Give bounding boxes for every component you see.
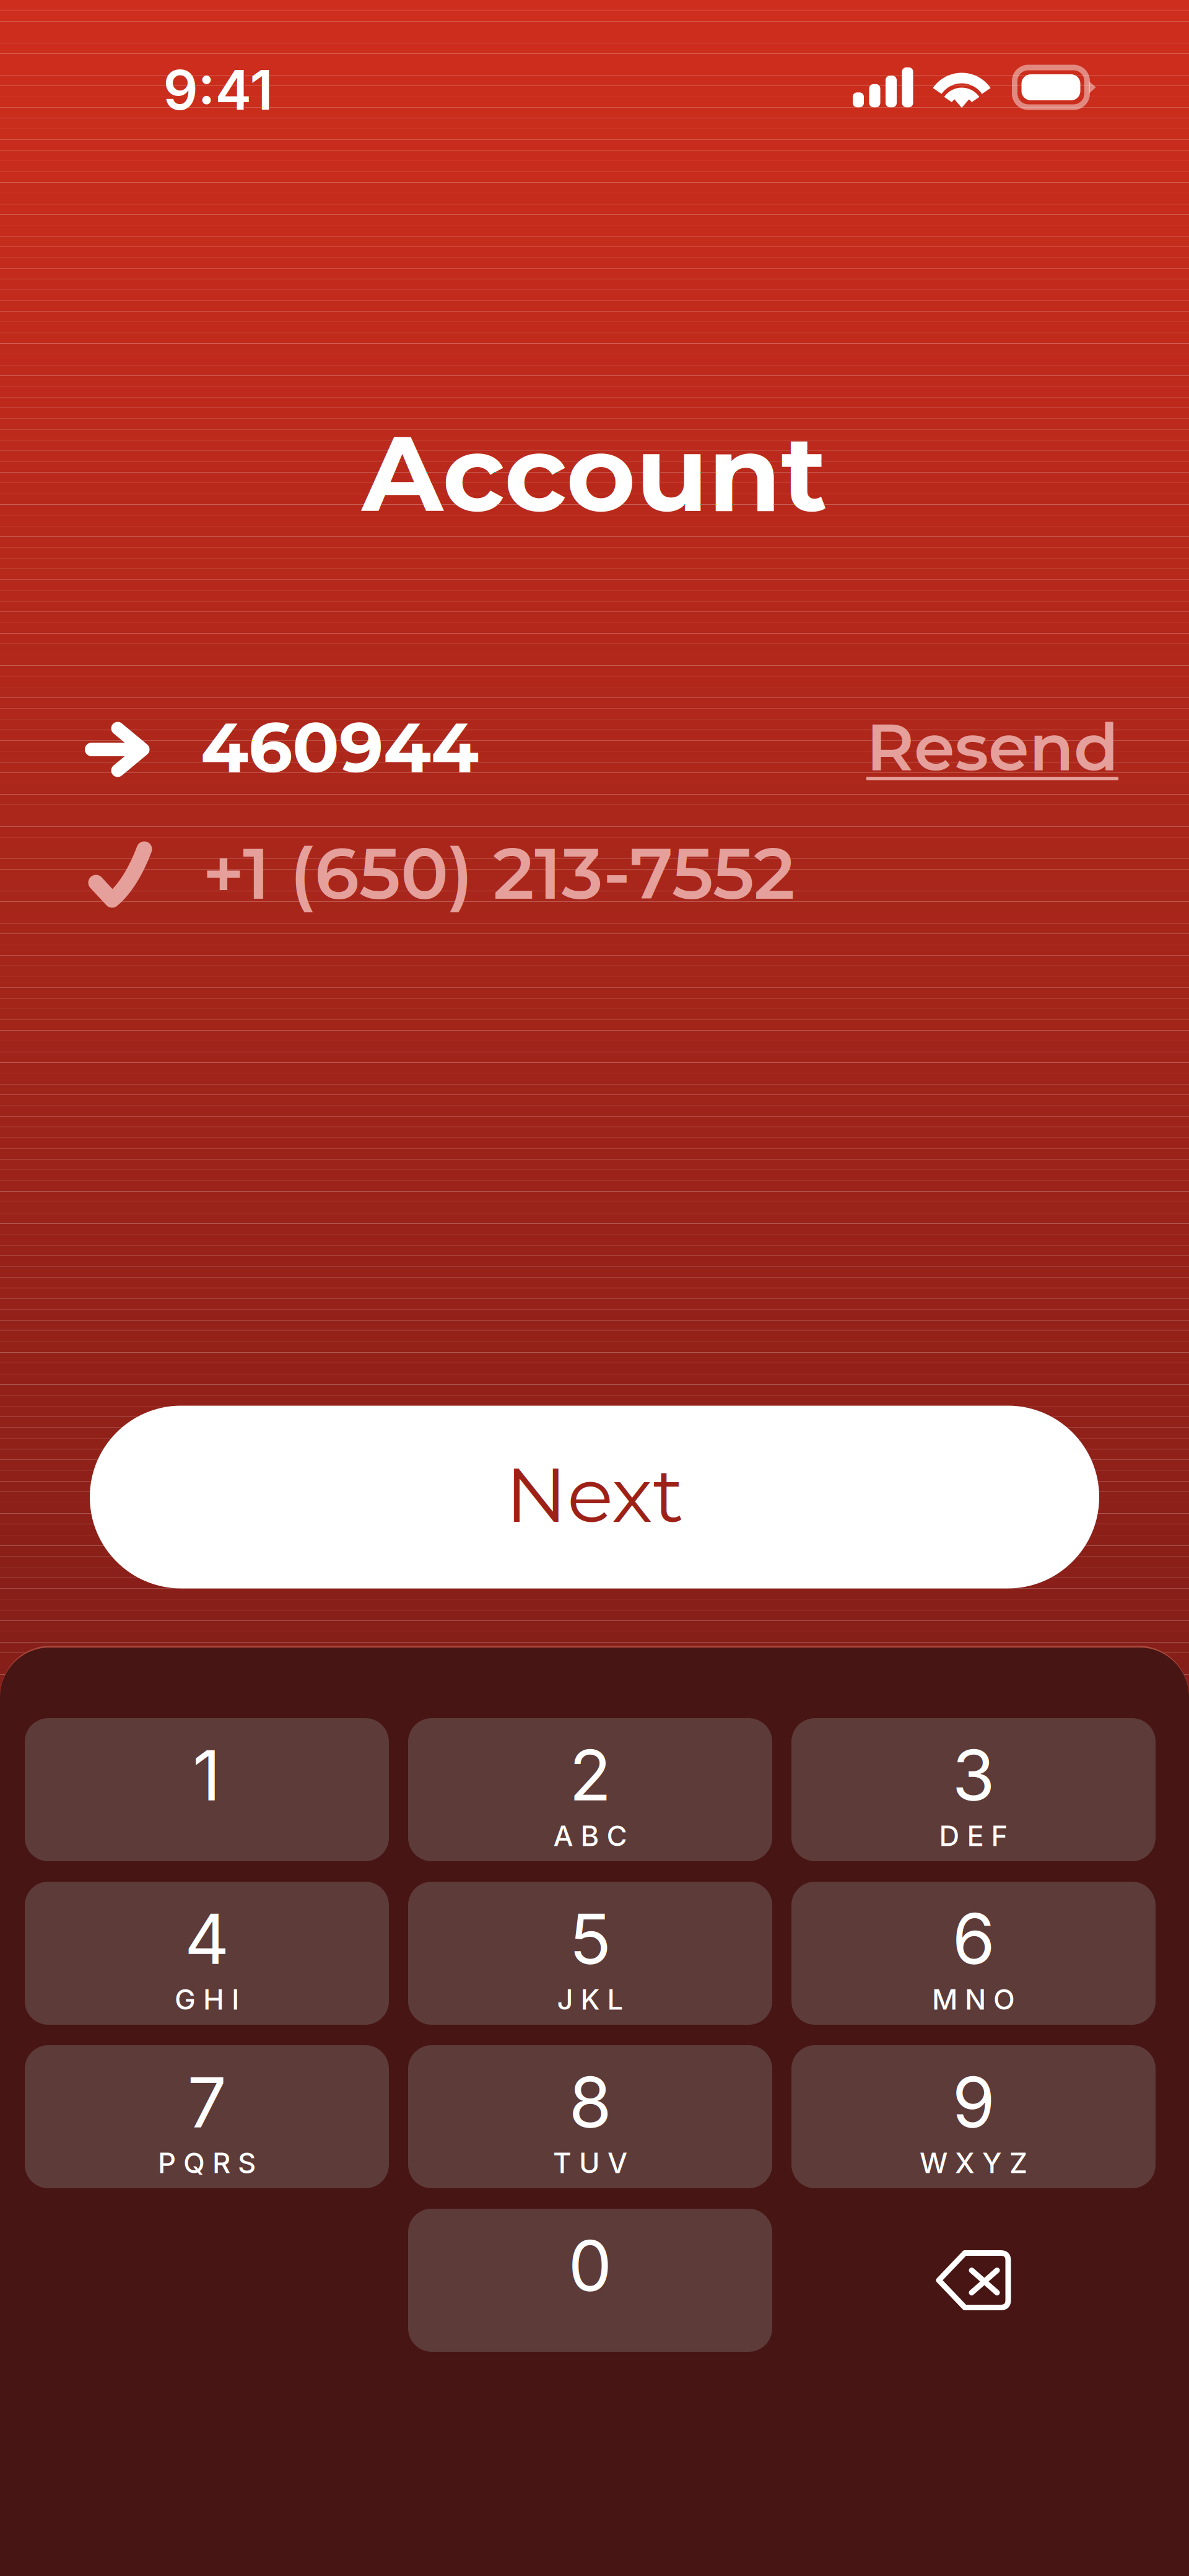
staticText: 3 xyxy=(952,1733,995,1817)
staticText: 7 xyxy=(187,2060,226,2144)
button[interactable]: 5 xyxy=(408,1882,772,2025)
button[interactable]: 9 xyxy=(791,2045,1156,2188)
staticText: 9 xyxy=(952,2060,995,2144)
staticText: 9:41 xyxy=(163,57,273,123)
button[interactable]: 0 xyxy=(408,2209,772,2352)
button[interactable]: 4 xyxy=(25,1882,389,2025)
staticText: J K L xyxy=(557,1982,623,2016)
staticText: 1 xyxy=(193,1733,221,1817)
button[interactable]: 6 xyxy=(791,1882,1156,2025)
staticText: Resend xyxy=(866,707,1118,787)
staticText: 8 xyxy=(569,2060,612,2144)
staticText: 0 xyxy=(568,2224,612,2308)
staticText: Next xyxy=(505,1448,684,1541)
staticText: 5 xyxy=(569,1897,611,1981)
staticText: P Q R S xyxy=(158,2146,256,2180)
button[interactable]: 7 xyxy=(25,2045,389,2188)
staticText: Account xyxy=(362,409,827,538)
staticText: T U V xyxy=(553,2146,627,2180)
button[interactable]: 8 xyxy=(408,2045,772,2188)
staticText: D E F xyxy=(939,1819,1008,1853)
staticText: A B C xyxy=(553,1819,627,1853)
button[interactable]: 1 xyxy=(25,1718,389,1861)
staticText: 2 xyxy=(569,1733,611,1817)
button[interactable]: Delete xyxy=(791,2209,1156,2352)
staticText: W X Y Z xyxy=(920,2146,1027,2180)
button[interactable]: 3 xyxy=(791,1718,1156,1861)
staticText: G H I xyxy=(175,1982,239,2016)
staticText: 6 xyxy=(952,1897,995,1981)
staticText: 460944 xyxy=(201,705,479,789)
button[interactable]: Resend xyxy=(858,707,1118,787)
staticText: +1 (650) 213-7552 xyxy=(203,830,795,917)
staticText: M N O xyxy=(932,1982,1015,2016)
button[interactable]: 2 xyxy=(408,1718,772,1861)
staticText: 4 xyxy=(185,1897,229,1981)
button[interactable]: Next xyxy=(90,1406,1099,1588)
